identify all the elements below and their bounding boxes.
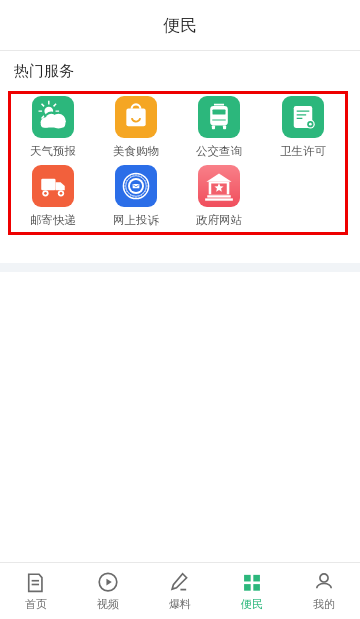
staticText: 热门服务 <box>14 62 74 81</box>
button[interactable]: 美食购物 <box>94 96 177 158</box>
button[interactable]: 天气预报 <box>11 96 94 158</box>
staticText: 便民 <box>241 597 263 611</box>
staticText: 首页 <box>25 597 47 611</box>
button[interactable]: 邮寄快递 <box>11 165 94 227</box>
button[interactable]: 公交查询 <box>177 96 261 158</box>
staticText: 卫生许可 <box>280 144 326 158</box>
staticText: 爆料 <box>169 597 191 611</box>
staticText: 美食购物 <box>113 144 159 158</box>
button[interactable]: 便民 <box>216 563 288 619</box>
staticText: 视频 <box>97 597 119 611</box>
button[interactable]: 爆料 <box>144 563 216 619</box>
staticText: 公交查询 <box>196 144 242 158</box>
staticText: 网上投诉 <box>113 213 159 227</box>
button[interactable]: 政府网站 <box>177 165 261 227</box>
button[interactable]: 视频 <box>72 563 144 619</box>
button[interactable]: 我的 <box>288 563 360 619</box>
button[interactable]: 网上投诉 <box>94 165 177 227</box>
staticText: 我的 <box>313 597 335 611</box>
staticText: 便民 <box>163 15 197 36</box>
button[interactable]: 卫生许可 <box>261 96 345 158</box>
staticText: 政府网站 <box>196 213 242 227</box>
staticText: 邮寄快递 <box>30 213 76 227</box>
staticText: 天气预报 <box>30 144 76 158</box>
button[interactable]: 首页 <box>0 563 72 619</box>
